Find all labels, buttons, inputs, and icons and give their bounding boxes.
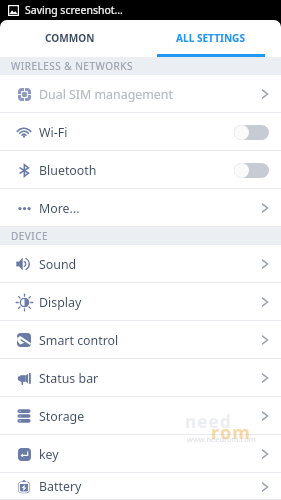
staticText: ALL SETTINGS (176, 31, 245, 45)
staticText: More... (39, 200, 80, 217)
staticText: Battery (39, 478, 82, 495)
staticText: WIRELESS & NETWORKS (11, 59, 133, 73)
button[interactable]: Toggle Bluetooth (234, 163, 269, 178)
button[interactable]: COMMON (0, 20, 140, 55)
button[interactable]: Sound (0, 245, 281, 283)
button[interactable]: Display (0, 283, 281, 321)
button[interactable]: ALL SETTINGS (140, 20, 281, 55)
button[interactable]: Battery (0, 473, 281, 500)
staticText: Wi-Fi (39, 124, 68, 141)
button[interactable]: key (0, 435, 281, 473)
staticText: Status bar (39, 370, 99, 387)
button[interactable]: Bluetooth (0, 151, 281, 189)
staticText: www.needrom.com (187, 434, 256, 444)
button[interactable]: Toggle Wi-Fi (234, 125, 269, 140)
button[interactable]: Smart control (0, 321, 281, 359)
staticText: DEVICE (11, 229, 49, 243)
staticText: rom (211, 420, 252, 445)
button[interactable]: More... (0, 189, 281, 227)
staticText: COMMON (45, 31, 95, 45)
staticText: Smart control (39, 332, 119, 349)
staticText: Bluetooth (39, 162, 97, 179)
button[interactable]: Dual SIM management (0, 75, 281, 113)
staticText: Dual SIM management (39, 86, 173, 103)
staticText: Sound (39, 256, 77, 273)
button[interactable]: Status bar (0, 359, 281, 397)
button[interactable]: Storage (0, 397, 281, 435)
staticText: Display (39, 294, 82, 311)
staticText: need (185, 410, 232, 433)
staticText: key (39, 446, 59, 463)
staticText: Saving screenshot… (25, 3, 123, 17)
button[interactable]: Wi-Fi (0, 113, 281, 151)
staticText: Storage (39, 408, 85, 425)
